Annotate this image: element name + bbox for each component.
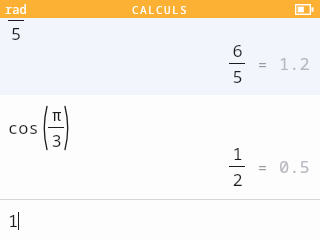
staticText: 3 [51, 129, 62, 152]
staticText: = [258, 157, 268, 177]
staticText: π [51, 103, 62, 126]
staticText: CALCULS [132, 2, 188, 17]
button[interactable]: 1 [0, 200, 320, 240]
button[interactable]: rad [0, 1, 31, 17]
button[interactable]: 5 [0, 18, 320, 95]
staticText: = [258, 54, 268, 74]
staticText: 1 [8, 209, 19, 232]
staticText: 1.2 [279, 52, 310, 75]
staticText: 5 [232, 65, 243, 88]
staticText: 0.5 [279, 155, 310, 178]
other: Battery [295, 4, 315, 15]
staticText: cos [8, 116, 39, 139]
staticText: 6 [232, 39, 243, 62]
button[interactable]: cos [0, 95, 320, 199]
staticText: rad [5, 1, 27, 17]
staticText: 1 [232, 142, 243, 165]
staticText: 2 [232, 168, 243, 191]
staticText: 5 [8, 22, 24, 45]
